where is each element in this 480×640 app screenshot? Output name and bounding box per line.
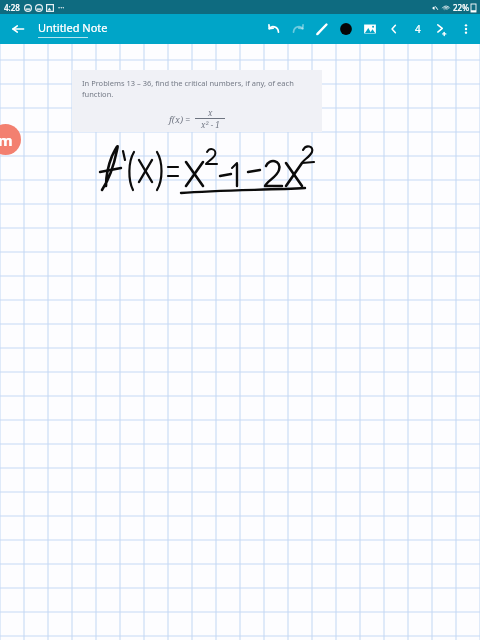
staticText: In Problems 13 – 36, find the critical n…	[82, 78, 312, 99]
button[interactable]: Next page	[430, 16, 454, 42]
button[interactable]: Back	[6, 17, 30, 41]
button[interactable]: Color	[334, 16, 358, 42]
staticText: Untitled Note	[38, 20, 108, 35]
staticText: m	[0, 130, 13, 150]
staticText: 4	[415, 22, 421, 36]
button[interactable]: In Problems 13 – 36, find the critical n…	[72, 70, 322, 132]
button[interactable]: Redo	[286, 16, 310, 42]
button[interactable]: Previous page	[382, 16, 406, 42]
staticText: 22%	[453, 2, 469, 13]
button[interactable]: Undo	[262, 16, 286, 42]
staticText: 4:28	[4, 2, 20, 13]
button[interactable]: Untitled Note	[38, 20, 108, 38]
staticText: x² − 1	[201, 119, 220, 130]
button[interactable]: Marker	[0, 124, 21, 155]
staticText: f(x) =	[169, 113, 191, 125]
staticText: ···	[58, 2, 65, 13]
button[interactable]: 4	[406, 16, 430, 42]
button[interactable]: Insert image	[358, 16, 382, 42]
staticText: x	[208, 107, 213, 118]
button[interactable]: More options	[454, 16, 478, 42]
button[interactable]: Pen	[310, 16, 334, 42]
